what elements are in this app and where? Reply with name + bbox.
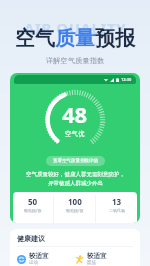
staticText: 运动 — [29, 260, 38, 266]
staticText: 质量 — [55, 26, 95, 51]
button[interactable]: 较适宜 晨练 — [75, 252, 133, 266]
button[interactable]: 12:30 — [10, 73, 140, 223]
staticText: 健康建议 — [17, 234, 45, 243]
staticText: 异常敏感人群减少外出 — [48, 180, 103, 187]
staticText: 100 — [68, 196, 82, 207]
staticText: 48 — [62, 99, 88, 129]
button[interactable]: 查看空气质量指数详情 — [46, 156, 105, 166]
staticText: 空气 — [15, 26, 55, 51]
staticText: 二氧化氮 — [109, 208, 125, 213]
button[interactable]: 健康建议 — [10, 229, 140, 266]
staticText: 颗粒物/微 — [66, 208, 84, 213]
staticText: AIR QUALITY — [24, 18, 127, 38]
staticText: 12:30 — [121, 77, 132, 82]
button[interactable]: 较适宜 运动 — [17, 252, 75, 266]
staticText: 预报 — [95, 26, 135, 51]
staticText: 颗粒物/微 — [24, 208, 42, 213]
staticText: 较适宜 — [87, 252, 107, 260]
staticText: 较适宜 — [29, 252, 49, 260]
button[interactable]: 13 — [109, 195, 125, 214]
staticText: 13 — [112, 196, 122, 207]
staticText: 详解空气质量指数 — [46, 56, 105, 65]
staticText: 晨练 — [87, 260, 96, 266]
staticText: 查看空气质量指数详情 — [53, 158, 98, 164]
button[interactable]: 100 — [66, 195, 84, 214]
staticText: 空气质量较好，健康人群无需刻意防护， — [26, 171, 125, 178]
staticText: 50 — [28, 196, 38, 207]
staticText: 空气优 — [65, 130, 85, 138]
button[interactable]: 50 — [24, 195, 42, 214]
